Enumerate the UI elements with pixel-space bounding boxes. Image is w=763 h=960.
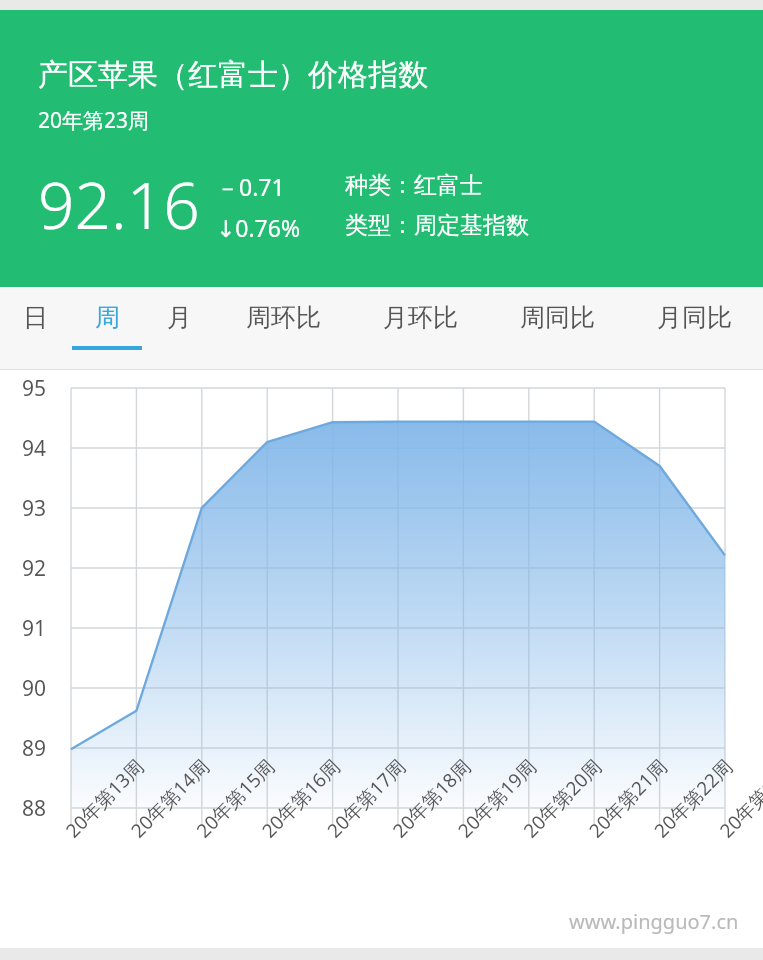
staticText: 月环比 xyxy=(383,302,458,333)
button[interactable]: 月环比 xyxy=(352,287,489,370)
staticText: 月 xyxy=(167,302,192,333)
staticText: 月同比 xyxy=(657,302,732,333)
staticText: 类型：周定基指数 xyxy=(345,211,529,240)
staticText: 20年第23周 xyxy=(38,106,150,135)
staticText: 种类：红富士 xyxy=(345,171,483,200)
staticText: 周环比 xyxy=(246,302,321,333)
staticText: 产区苹果（红富士）价格指数 xyxy=(38,56,428,94)
button[interactable]: 日 xyxy=(0,287,71,370)
staticText: 日 xyxy=(23,302,48,333)
button[interactable]: 周环比 xyxy=(215,287,352,370)
button[interactable]: 周 xyxy=(71,287,143,370)
staticText: 92.16 xyxy=(38,161,200,248)
button[interactable]: 周同比 xyxy=(489,287,626,370)
staticText: －0.71 xyxy=(216,171,285,202)
button[interactable]: 月 xyxy=(143,287,215,370)
button[interactable]: 月同比 xyxy=(626,287,763,370)
staticText: 周 xyxy=(95,302,120,333)
staticText: 周同比 xyxy=(520,302,595,333)
staticText: ↓0.76% xyxy=(216,212,301,243)
